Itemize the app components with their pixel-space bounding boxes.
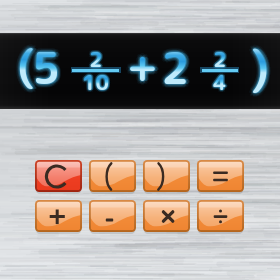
staticText: 10 — [84, 67, 111, 96]
staticText: 10 — [82, 65, 109, 94]
staticText: ( — [15, 33, 33, 94]
staticText: 2 — [165, 37, 194, 98]
staticText: 5 — [35, 34, 64, 95]
staticText: 4 — [214, 67, 228, 96]
staticText: ) — [251, 39, 270, 103]
staticText: ( — [18, 34, 36, 95]
button[interactable]: Minus — [89, 200, 136, 233]
staticText: 2 — [88, 43, 102, 72]
staticText: ) — [251, 37, 270, 101]
button[interactable]: Multiply — [143, 200, 190, 233]
staticText: ) — [249, 34, 268, 98]
staticText: 5 — [29, 40, 58, 101]
staticText: 2 — [164, 37, 193, 98]
staticText: 2 — [161, 36, 190, 97]
staticText: 2 — [212, 43, 226, 72]
staticText: 4 — [215, 67, 229, 96]
staticText: 4 — [212, 68, 226, 97]
staticText: 2 — [213, 46, 227, 75]
staticText: 5 — [31, 36, 60, 97]
staticText: ( — [14, 32, 32, 93]
staticText: 2 — [162, 37, 191, 98]
staticText: 10 — [83, 66, 110, 95]
staticText: + — [127, 34, 158, 93]
staticText: 4 — [214, 66, 228, 95]
staticText: 2 — [215, 44, 229, 73]
staticText: 2 — [88, 45, 102, 74]
staticText: 5 — [35, 40, 64, 101]
staticText: 2 — [211, 42, 225, 71]
staticText: 5 — [32, 38, 61, 99]
staticText: 10 — [84, 67, 111, 96]
staticText: + — [131, 36, 162, 95]
staticText: + — [123, 36, 154, 95]
staticText: 2 — [89, 43, 103, 72]
staticText: 2 — [161, 33, 190, 94]
staticText: ( — [17, 36, 35, 97]
staticText: 4 — [214, 68, 228, 97]
staticText: 5 — [31, 38, 60, 99]
staticText: 2 — [91, 44, 105, 73]
staticText: ) — [252, 36, 271, 100]
staticText: 4 — [215, 65, 229, 94]
staticText: 2 — [91, 46, 105, 75]
staticText: 2 — [88, 44, 102, 73]
staticText: ) — [248, 33, 267, 97]
staticText: + — [130, 36, 161, 95]
button[interactable]: Equals — [197, 160, 244, 193]
button[interactable]: Open parenthesis — [89, 160, 136, 193]
staticText: 2 — [164, 34, 193, 95]
staticText: ) — [247, 36, 266, 100]
staticText: ) — [254, 36, 273, 100]
staticText: ( — [20, 38, 38, 99]
staticText: ( — [16, 35, 34, 96]
staticText: 4 — [212, 67, 226, 96]
staticText: ) — [254, 39, 273, 103]
staticText: ) — [251, 36, 270, 100]
button[interactable]: Plus — [35, 200, 82, 233]
staticText: 5 — [36, 37, 65, 98]
staticText: 2 — [90, 44, 104, 73]
staticText: 5 — [33, 38, 62, 99]
staticText: 2 — [90, 45, 104, 74]
staticText: ( — [15, 35, 33, 96]
staticText: 2 — [164, 37, 193, 98]
staticText: 4 — [213, 66, 227, 95]
staticText: 2 — [211, 46, 225, 75]
staticText: ) — [251, 35, 270, 99]
staticText: 10 — [80, 67, 107, 96]
staticText: 2 — [160, 38, 189, 99]
staticText: 2 — [214, 44, 228, 73]
staticText: + — [130, 39, 161, 98]
staticText: 2 — [91, 42, 105, 71]
staticText: + — [125, 38, 156, 97]
button[interactable]: Close parenthesis — [143, 160, 190, 193]
staticText: 2 — [163, 35, 192, 96]
button[interactable]: Clear — [35, 160, 82, 193]
staticText: 4 — [211, 65, 225, 94]
staticText: 4 — [214, 66, 228, 95]
staticText: 5 — [36, 37, 65, 98]
staticText: + — [126, 35, 157, 94]
staticText: + — [128, 37, 159, 96]
staticText: 2 — [213, 42, 227, 71]
staticText: 2 — [162, 36, 191, 97]
staticText: 10 — [84, 65, 111, 94]
staticText: 2 — [213, 44, 227, 73]
staticText: 2 — [215, 44, 229, 73]
staticText: ( — [20, 35, 38, 96]
button[interactable]: Divide — [197, 200, 244, 233]
staticText: 4 — [214, 68, 228, 97]
staticText: 4 — [212, 68, 226, 97]
staticText: 2 — [213, 42, 227, 71]
staticText: 10 — [80, 69, 107, 98]
staticText: + — [127, 37, 158, 96]
staticText: 2 — [161, 40, 190, 101]
staticText: ( — [16, 34, 34, 95]
staticText: 5 — [29, 34, 58, 95]
staticText: 4 — [212, 66, 226, 95]
staticText: 10 — [81, 67, 108, 96]
staticText: 2 — [88, 45, 102, 74]
staticText: ( — [21, 35, 39, 96]
staticText: ) — [249, 38, 268, 102]
